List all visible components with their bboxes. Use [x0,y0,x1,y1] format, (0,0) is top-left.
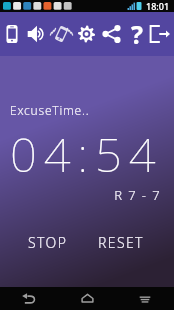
button[interactable]: Share [99,12,124,56]
button[interactable]: Exit [149,12,174,56]
button[interactable]: Help [124,12,149,56]
staticText: R 7 - 7 [0,186,161,204]
staticText: ? [131,17,143,51]
button[interactable]: Recent apps [116,287,174,310]
staticText: RESET [98,233,144,252]
button[interactable]: RESET [82,231,160,253]
staticText: 04:54 [10,122,174,186]
button[interactable]: Settings [74,12,99,56]
button[interactable]: Sound mode [24,12,49,56]
staticText: ExcuseTime.. [10,102,90,118]
button[interactable]: Back [0,287,58,310]
button[interactable]: Home [58,287,116,310]
button[interactable]: Shake to start [49,12,74,56]
staticText: 18:01 [146,0,170,12]
button[interactable]: STOP [14,231,82,253]
button[interactable]: Vibrate mode [0,12,24,56]
staticText: STOP [28,233,68,252]
